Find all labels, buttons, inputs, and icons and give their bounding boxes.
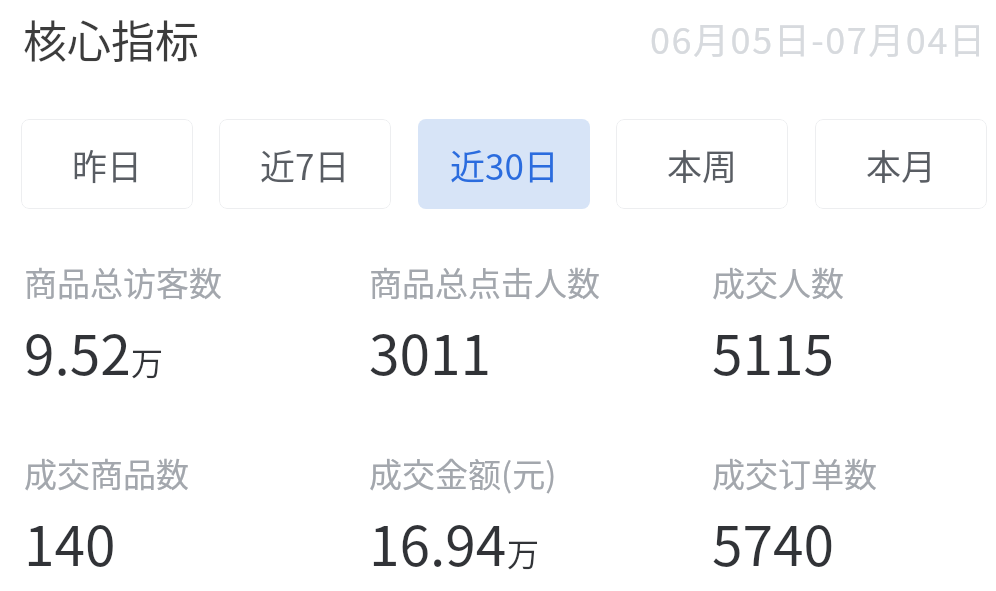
staticText: 本周 — [667, 139, 738, 190]
button[interactable]: 近30日 — [418, 119, 590, 209]
button[interactable]: 近7日 — [219, 119, 391, 209]
staticText: 140 — [24, 502, 116, 582]
staticText: 3011 — [369, 311, 492, 391]
staticText: 成交人数 — [712, 258, 844, 306]
staticText: 商品总访客数 — [24, 258, 222, 306]
staticText: 9.52 — [24, 311, 131, 391]
staticText: 万 — [131, 338, 164, 384]
staticText: 核心指标 — [23, 7, 199, 71]
staticText: 万 — [507, 529, 540, 575]
staticText: 成交商品数 — [24, 449, 189, 497]
staticText: 5115 — [712, 311, 835, 391]
staticText: 商品总点击人数 — [369, 258, 600, 306]
button[interactable]: 本月 — [815, 119, 987, 209]
button[interactable]: 昨日 — [21, 119, 193, 209]
staticText: 成交金额(元) — [369, 449, 557, 497]
button[interactable]: 本周 — [616, 119, 788, 209]
staticText: 近30日 — [450, 139, 559, 190]
staticText: 06月05日-07月04日 — [650, 12, 987, 64]
staticText: 16.94 — [369, 502, 507, 582]
staticText: 近7日 — [260, 139, 350, 190]
staticText: 成交订单数 — [712, 449, 877, 497]
staticText: 本月 — [866, 139, 937, 190]
staticText: 昨日 — [72, 139, 143, 190]
staticText: 5740 — [712, 502, 835, 582]
